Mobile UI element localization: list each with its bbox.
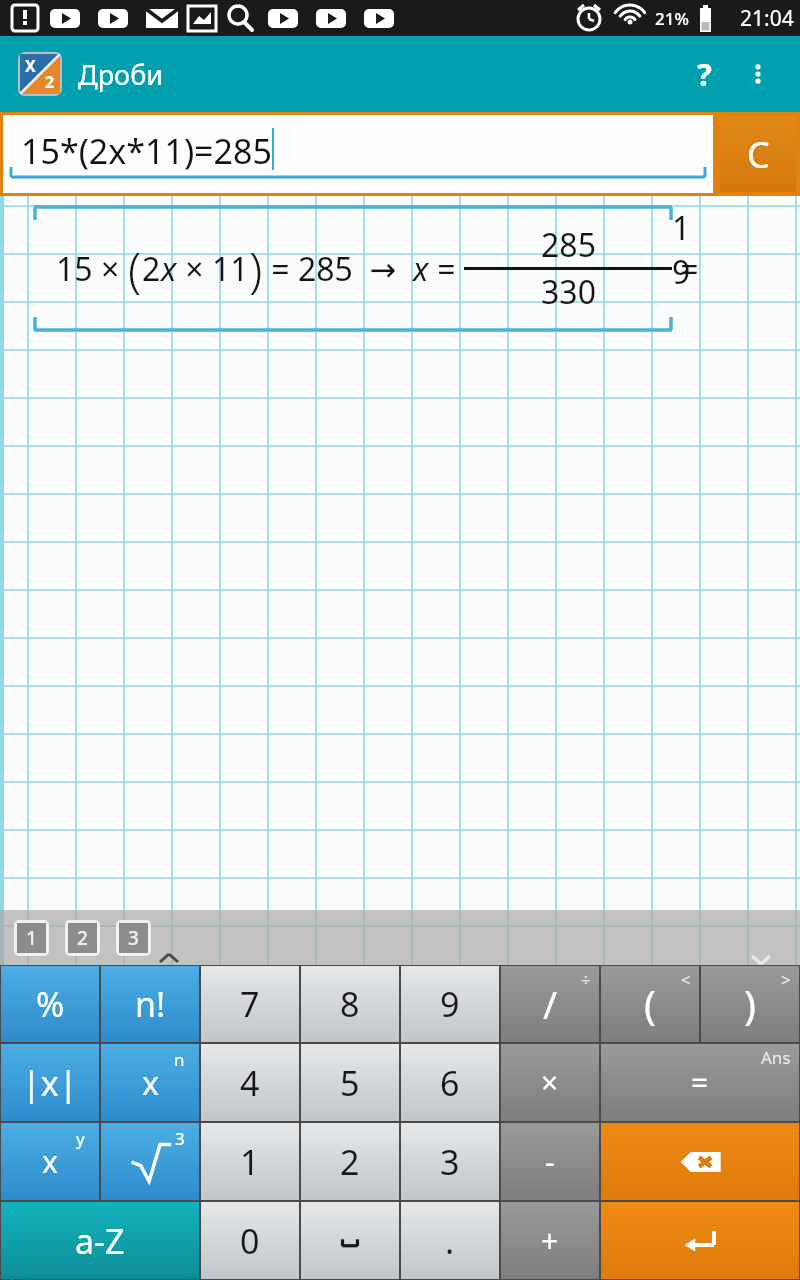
button[interactable]: More options bbox=[734, 50, 782, 98]
button[interactable]: . bbox=[401, 1202, 499, 1279]
staticText: 8 bbox=[340, 981, 360, 1027]
staticText: 9 bbox=[440, 981, 460, 1027]
staticText: a-Z bbox=[75, 1218, 125, 1264]
button[interactable]: 7 bbox=[201, 966, 299, 1042]
staticText: ) bbox=[249, 236, 263, 301]
button[interactable]: 3 bbox=[119, 923, 148, 953]
staticText: 0 bbox=[240, 1218, 260, 1264]
button[interactable]: - bbox=[501, 1123, 599, 1200]
staticText: Дроби bbox=[78, 56, 164, 93]
button[interactable]: 5 bbox=[301, 1044, 399, 1121]
button[interactable]: 15*(2x*11)=285 bbox=[3, 115, 713, 193]
button[interactable]: 4 bbox=[201, 1044, 299, 1121]
button[interactable]: 2 bbox=[301, 1123, 399, 1200]
staticText: % bbox=[36, 981, 65, 1027]
staticText: 1 bbox=[26, 925, 37, 951]
button[interactable]: 2 bbox=[68, 923, 97, 953]
button[interactable]: 1 bbox=[201, 1123, 299, 1200]
staticText: 15 × bbox=[56, 247, 128, 291]
button[interactable]: = bbox=[601, 1044, 799, 1121]
staticText: 21:04 bbox=[740, 4, 794, 33]
staticText: ) bbox=[744, 977, 756, 1031]
staticText: X bbox=[25, 55, 36, 77]
staticText: 3 bbox=[128, 925, 139, 951]
staticText: 3 bbox=[440, 1139, 460, 1185]
button[interactable]: 6 bbox=[401, 1044, 499, 1121]
staticText: 5 bbox=[340, 1060, 360, 1106]
staticText: x bbox=[161, 247, 177, 291]
button[interactable]: ( bbox=[601, 966, 699, 1042]
staticText: × bbox=[541, 1062, 559, 1103]
staticText: . bbox=[445, 1218, 455, 1264]
button[interactable]: x bbox=[101, 1044, 199, 1121]
button[interactable]: 3 bbox=[401, 1123, 499, 1200]
button[interactable]: + bbox=[501, 1202, 599, 1279]
staticText: x bbox=[413, 247, 429, 291]
staticText: 3 bbox=[175, 1127, 185, 1150]
staticText: x bbox=[142, 1061, 159, 1105]
button[interactable]: ) bbox=[701, 966, 799, 1042]
button[interactable]: 0 bbox=[201, 1202, 299, 1279]
staticText: 2 bbox=[45, 71, 55, 93]
staticText: ( bbox=[644, 977, 656, 1031]
staticText: < bbox=[681, 968, 691, 991]
staticText: 330 bbox=[541, 270, 596, 314]
staticText: - bbox=[545, 1141, 555, 1182]
button[interactable]: Backspace bbox=[601, 1123, 799, 1200]
button[interactable]: n! bbox=[101, 966, 199, 1042]
button[interactable]: Root bbox=[101, 1123, 199, 1200]
staticText: n bbox=[174, 1048, 185, 1071]
staticText: > bbox=[781, 968, 791, 991]
button[interactable]: / bbox=[501, 966, 599, 1042]
staticText: 21% bbox=[655, 7, 689, 30]
staticText: ( bbox=[128, 236, 142, 301]
staticText: / bbox=[543, 978, 558, 1030]
button[interactable]: 1 bbox=[17, 923, 46, 953]
button[interactable]: x bbox=[1, 1123, 99, 1200]
staticText: 4 bbox=[240, 1060, 260, 1106]
staticText: Ans bbox=[761, 1046, 791, 1069]
button[interactable]: |x| bbox=[1, 1044, 99, 1121]
staticText: = bbox=[429, 247, 464, 291]
staticText: C bbox=[747, 130, 770, 179]
button[interactable]: Space bbox=[301, 1202, 399, 1279]
staticText: 7 bbox=[240, 981, 260, 1027]
button[interactable]: 15 × bbox=[34, 206, 672, 331]
staticText: ÷ bbox=[581, 968, 591, 991]
button[interactable]: Help bbox=[678, 48, 730, 100]
staticText: y bbox=[76, 1127, 85, 1150]
staticText: 2 bbox=[77, 925, 88, 951]
staticText: 2 bbox=[142, 247, 161, 291]
staticText: n! bbox=[135, 981, 166, 1027]
staticText: × 11 bbox=[177, 247, 249, 291]
button[interactable]: 9 bbox=[401, 966, 499, 1042]
button[interactable]: % bbox=[1, 966, 99, 1042]
staticText: 6 bbox=[440, 1060, 460, 1106]
button[interactable]: Enter bbox=[601, 1202, 799, 1279]
staticText: 285 bbox=[541, 223, 596, 267]
button[interactable]: × bbox=[501, 1044, 599, 1121]
staticText: = bbox=[691, 1062, 709, 1103]
staticText: |x| bbox=[22, 1060, 78, 1106]
staticText: = 285 → bbox=[263, 247, 413, 291]
staticText: 15*(2x*11)=285 bbox=[21, 128, 272, 174]
staticText: 1 bbox=[240, 1139, 260, 1185]
button[interactable]: 8 bbox=[301, 966, 399, 1042]
staticText: x bbox=[42, 1141, 58, 1182]
button[interactable]: a-Z bbox=[1, 1202, 199, 1279]
staticText: ? bbox=[697, 53, 712, 95]
button[interactable]: C bbox=[720, 116, 796, 192]
staticText: + bbox=[541, 1220, 559, 1261]
staticText: 2 bbox=[340, 1139, 360, 1185]
